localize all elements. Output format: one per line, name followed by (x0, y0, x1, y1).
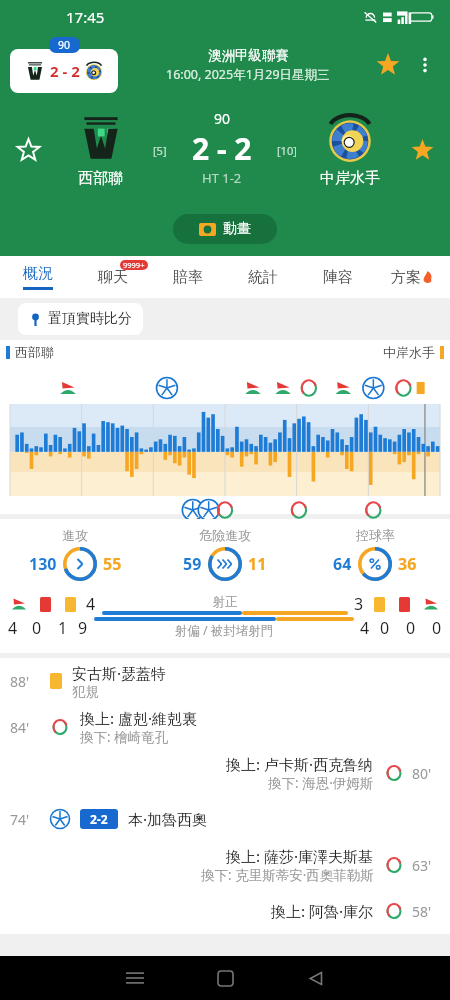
staticText: 換下: 檜崎竜孔 (80, 728, 169, 746)
button[interactable]: 進攻 (0, 527, 150, 581)
staticText: 4 (360, 617, 370, 639)
staticText: 安古斯·瑟蓋特 (72, 663, 167, 683)
button[interactable]: 換上: 阿魯·庫尔 (0, 888, 450, 934)
staticText: 換上: 盧剋·維剋裏 (80, 708, 198, 728)
button[interactable]: Follow home team (8, 130, 48, 170)
staticText: 9 (78, 617, 88, 639)
staticText: 換上: 阿魯·庫尔 (271, 901, 374, 921)
button[interactable]: Back (270, 956, 360, 1000)
staticText: 90 (214, 109, 231, 128)
staticText: 澳洲甲級聯賽 (208, 47, 289, 64)
button[interactable]: 概況 (0, 256, 75, 298)
staticText: 賠率 (173, 268, 203, 287)
staticText: 中岸水手 (320, 169, 380, 188)
staticText: 2 - 2 (50, 61, 80, 81)
staticText: 90 (58, 38, 71, 52)
button[interactable]: 74' (0, 796, 450, 842)
staticText: 16:00, 2025年1月29日星期三 (166, 66, 330, 83)
staticText: 0 (380, 617, 390, 639)
button[interactable]: 聊天 (75, 256, 150, 298)
button[interactable]: Favourite (368, 45, 408, 85)
button[interactable]: 換上: 卢卡斯·西克鲁纳 (0, 750, 450, 796)
staticText: 換上: 薩莎·庫澤夫斯基 (226, 846, 374, 866)
staticText: 63' (412, 856, 440, 875)
staticText: [10] (277, 143, 297, 158)
staticText: 11 (248, 553, 267, 575)
button[interactable]: 賠率 (150, 256, 225, 298)
staticText: 陣容 (323, 268, 353, 287)
staticText: 130 (29, 553, 57, 575)
staticText: 58' (412, 902, 440, 921)
staticText: 74' (10, 810, 44, 829)
button[interactable]: More options (408, 48, 442, 82)
button[interactable]: 換上: 薩莎·庫澤夫斯基 (0, 842, 450, 888)
staticText: 動畫 (223, 220, 251, 238)
staticText: 80' (412, 764, 440, 783)
staticText: 西部聯 (15, 344, 54, 360)
staticText: 36 (398, 553, 417, 575)
button[interactable]: Following away team (402, 130, 442, 170)
staticText: 控球率 (356, 527, 395, 543)
button[interactable]: 方案 (375, 256, 450, 298)
staticText: 西部聯 (78, 169, 123, 188)
staticText: 聊天 (98, 268, 128, 287)
button[interactable]: 84' (0, 704, 450, 750)
staticText: 換下: 克里斯蒂安·西奧菲勒斯 (201, 866, 374, 884)
button[interactable]: 2 - 2 (10, 49, 118, 93)
staticText: 1 (58, 617, 68, 639)
staticText: [5] (153, 143, 167, 158)
staticText: HT 1-2 (202, 169, 242, 187)
staticText: 88' (10, 672, 44, 691)
staticText: 9999+ (123, 260, 145, 270)
staticText: 2 - 2 (192, 128, 252, 169)
staticText: 64 (333, 553, 352, 575)
staticText: 概況 (23, 264, 53, 283)
button[interactable]: 控球率 (300, 527, 450, 581)
staticText: 4 (86, 593, 96, 615)
staticText: 犯規 (72, 683, 99, 700)
button[interactable]: 置頂實時比分 (18, 303, 143, 335)
staticText: 射正 (102, 594, 348, 610)
button[interactable]: Recent apps (90, 956, 180, 1000)
staticText: 0 (406, 617, 416, 639)
button[interactable]: 危險進攻 (150, 527, 300, 581)
button[interactable]: 陣容 (300, 256, 375, 298)
staticText: 4 (8, 617, 18, 639)
staticText: 中岸水手 (383, 344, 435, 360)
staticText: 本·加魯西奧 (128, 809, 208, 829)
button[interactable]: Home (180, 956, 270, 1000)
staticText: 2-2 (90, 811, 108, 827)
staticText: 危險進攻 (199, 527, 251, 543)
staticText: 84' (10, 718, 44, 737)
button[interactable]: 88' (0, 658, 450, 704)
button[interactable]: 動畫 (173, 214, 277, 244)
staticText: 17:45 (66, 7, 105, 27)
staticText: 進攻 (62, 527, 88, 543)
staticText: 0 (32, 617, 42, 639)
staticText: 換下: 海恩·伊姆斯 (268, 774, 374, 792)
staticText: 方案 (391, 268, 421, 287)
staticText: 射偏 / 被封堵射門 (94, 622, 354, 639)
button[interactable]: 統計 (225, 256, 300, 298)
staticText: 3 (354, 593, 364, 615)
staticText: 統計 (248, 268, 278, 287)
staticText: 59 (183, 553, 202, 575)
staticText: 置頂實時比分 (48, 310, 132, 328)
staticText: 0 (432, 617, 442, 639)
staticText: 55 (103, 553, 122, 575)
staticText: 換上: 卢卡斯·西克鲁纳 (226, 754, 374, 774)
